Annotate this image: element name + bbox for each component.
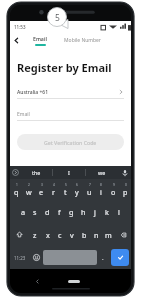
staticText: e (39, 187, 44, 197)
button[interactable]: 5 (59, 179, 71, 201)
button[interactable]: Backspace (114, 223, 131, 246)
button[interactable]: c (54, 223, 66, 246)
staticText: 7 (89, 183, 91, 187)
staticText: the (32, 169, 41, 176)
button[interactable]: b (78, 223, 90, 246)
staticText: t (64, 187, 67, 197)
staticText: g (69, 207, 74, 217)
staticText: 0 (125, 183, 127, 187)
staticText: l (118, 207, 120, 217)
button[interactable]: s (29, 201, 41, 223)
button[interactable]: I (53, 166, 85, 179)
staticText: 5 (55, 12, 60, 24)
staticText: r (52, 187, 55, 197)
button[interactable]: 11:23 (10, 246, 29, 269)
staticText: s (33, 207, 37, 217)
staticText: k (105, 207, 109, 217)
staticText: v (70, 230, 74, 240)
staticText: I (68, 169, 70, 176)
button[interactable]: v (66, 223, 78, 246)
staticText: Email (33, 35, 47, 42)
staticText: d (45, 207, 50, 217)
staticText: x (46, 230, 50, 240)
button[interactable]: a (17, 201, 29, 223)
button[interactable]: g (65, 201, 77, 223)
button[interactable]: 0 (119, 179, 131, 201)
staticText: 6 (76, 183, 78, 187)
staticText: 8 (100, 183, 102, 187)
button[interactable]: z (28, 223, 41, 246)
button[interactable]: m (102, 223, 114, 246)
staticText: f (58, 207, 61, 217)
staticText: y (75, 187, 79, 197)
staticText: we (98, 169, 106, 176)
button[interactable]: Email (17, 109, 124, 120)
staticText: a (21, 207, 26, 217)
staticText: w (26, 187, 32, 197)
staticText: q (14, 187, 19, 197)
button[interactable]: Done (111, 249, 129, 266)
button[interactable]: f (53, 201, 65, 223)
staticText: 5 (65, 183, 67, 187)
button[interactable]: x (41, 223, 54, 246)
button[interactable]: 3 (35, 179, 47, 201)
button[interactable]: Mobile Number (57, 32, 107, 48)
staticText: i (100, 187, 102, 197)
staticText: . (102, 254, 104, 262)
staticText: p (123, 187, 128, 197)
staticText: Mobile Number (64, 37, 101, 44)
staticText: 11:23 (14, 255, 26, 261)
button[interactable]: Voice input (118, 166, 131, 179)
button[interactable]: 1 (10, 179, 23, 201)
staticText: Australia +61 (17, 89, 49, 96)
button[interactable]: we (86, 166, 118, 179)
button[interactable]: l (113, 201, 125, 223)
button[interactable]: Get Verification Code (17, 134, 124, 150)
staticText: h (81, 207, 86, 217)
button[interactable]: j (89, 201, 101, 223)
button[interactable]: Shift (10, 223, 28, 246)
button[interactable]: 6 (71, 179, 83, 201)
button[interactable]: Space (43, 250, 97, 265)
button[interactable]: 9 (107, 179, 119, 201)
staticText: o (111, 187, 116, 197)
button[interactable]: Expand suggestions (10, 166, 21, 179)
staticText: 1 (16, 183, 18, 187)
staticText: z (33, 230, 37, 240)
staticText: 2 (28, 183, 30, 187)
button[interactable]: . (97, 246, 109, 269)
button[interactable]: the (21, 166, 52, 179)
button[interactable]: Back (32, 276, 42, 286)
button[interactable]: Home (66, 277, 82, 285)
staticText: 3 (41, 183, 43, 187)
staticText: b (82, 230, 87, 240)
staticText: c (58, 230, 62, 240)
staticText: Register by Email (17, 60, 112, 75)
staticText: 4 (53, 183, 55, 187)
staticText: n (94, 230, 99, 240)
staticText: Get Verification Code (44, 139, 97, 146)
button[interactable]: Emoji (29, 246, 43, 269)
button[interactable]: k (101, 201, 113, 223)
staticText: m (105, 230, 112, 240)
button[interactable]: 2 (23, 179, 35, 201)
button[interactable]: h (77, 201, 89, 223)
staticText: 11:53 (14, 24, 26, 30)
button[interactable]: Email (23, 32, 57, 48)
button[interactable]: 8 (95, 179, 107, 201)
button[interactable]: Australia +61 (17, 86, 124, 98)
staticText: j (94, 207, 96, 217)
staticText: 9 (113, 183, 115, 187)
button[interactable]: n (90, 223, 102, 246)
button[interactable]: 7 (83, 179, 95, 201)
button[interactable]: 4 (47, 179, 59, 201)
staticText: Email (17, 111, 30, 118)
button[interactable]: Back (10, 32, 23, 48)
staticText: u (87, 187, 92, 197)
button[interactable]: d (41, 201, 53, 223)
